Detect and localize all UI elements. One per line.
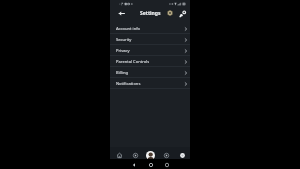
button[interactable]: Notifications xyxy=(110,78,190,89)
button[interactable]: Profile xyxy=(146,151,155,160)
button[interactable]: Home xyxy=(115,151,123,159)
staticText: Privacy xyxy=(116,48,130,54)
button[interactable]: Library xyxy=(162,151,170,159)
button[interactable]: Rewards xyxy=(167,10,173,16)
button[interactable]: Back xyxy=(130,161,137,168)
staticText: Security xyxy=(116,37,132,43)
button[interactable]: Recents xyxy=(163,161,170,168)
button[interactable]: Account info xyxy=(110,23,190,34)
button[interactable]: Home xyxy=(147,161,154,168)
button[interactable]: Back xyxy=(116,8,126,18)
button[interactable]: More xyxy=(178,151,186,159)
staticText: Billing xyxy=(116,70,128,76)
staticText: Parental Controls xyxy=(116,59,150,65)
staticText: Notifications xyxy=(116,81,141,87)
button[interactable]: Watch xyxy=(131,151,139,159)
button[interactable]: Parental Controls xyxy=(110,56,190,67)
button[interactable]: Account xyxy=(178,9,187,18)
button[interactable]: Billing xyxy=(110,67,190,78)
staticText: Settings xyxy=(140,10,161,17)
button[interactable]: Security xyxy=(110,34,190,45)
button[interactable]: Privacy xyxy=(110,45,190,56)
staticText: Account info xyxy=(116,26,141,32)
